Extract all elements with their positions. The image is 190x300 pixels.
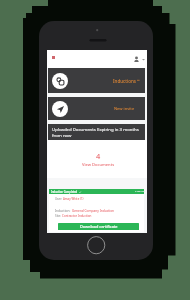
button[interactable]: Account menu — [132, 54, 145, 65]
staticText: General Company Induction — [72, 209, 115, 213]
staticText: Induction: — [55, 209, 72, 213]
button[interactable]: Menu — [50, 54, 57, 61]
staticText: View Documents — [82, 162, 115, 168]
staticText: Site: — [55, 214, 62, 218]
button[interactable]: View Documents — [82, 162, 115, 168]
staticText: New invite — [114, 106, 135, 111]
staticText: Contractor Induction — [62, 214, 92, 218]
staticText: Induction Completed — [51, 190, 78, 194]
staticText: 4 — [96, 151, 101, 161]
button[interactable]: Download certificate — [58, 223, 139, 230]
button[interactable]: Inductions — [48, 68, 145, 93]
staticText: a day ago — [135, 190, 146, 193]
staticText: Uploaded Documents Expiring in 3 months … — [52, 126, 139, 138]
staticText: Download certificate — [80, 224, 118, 229]
button[interactable]: New invite — [48, 97, 145, 120]
staticText: Inductions — [113, 78, 136, 84]
staticText: User: — [55, 197, 63, 201]
staticText: Amay White (1) — [63, 197, 84, 201]
